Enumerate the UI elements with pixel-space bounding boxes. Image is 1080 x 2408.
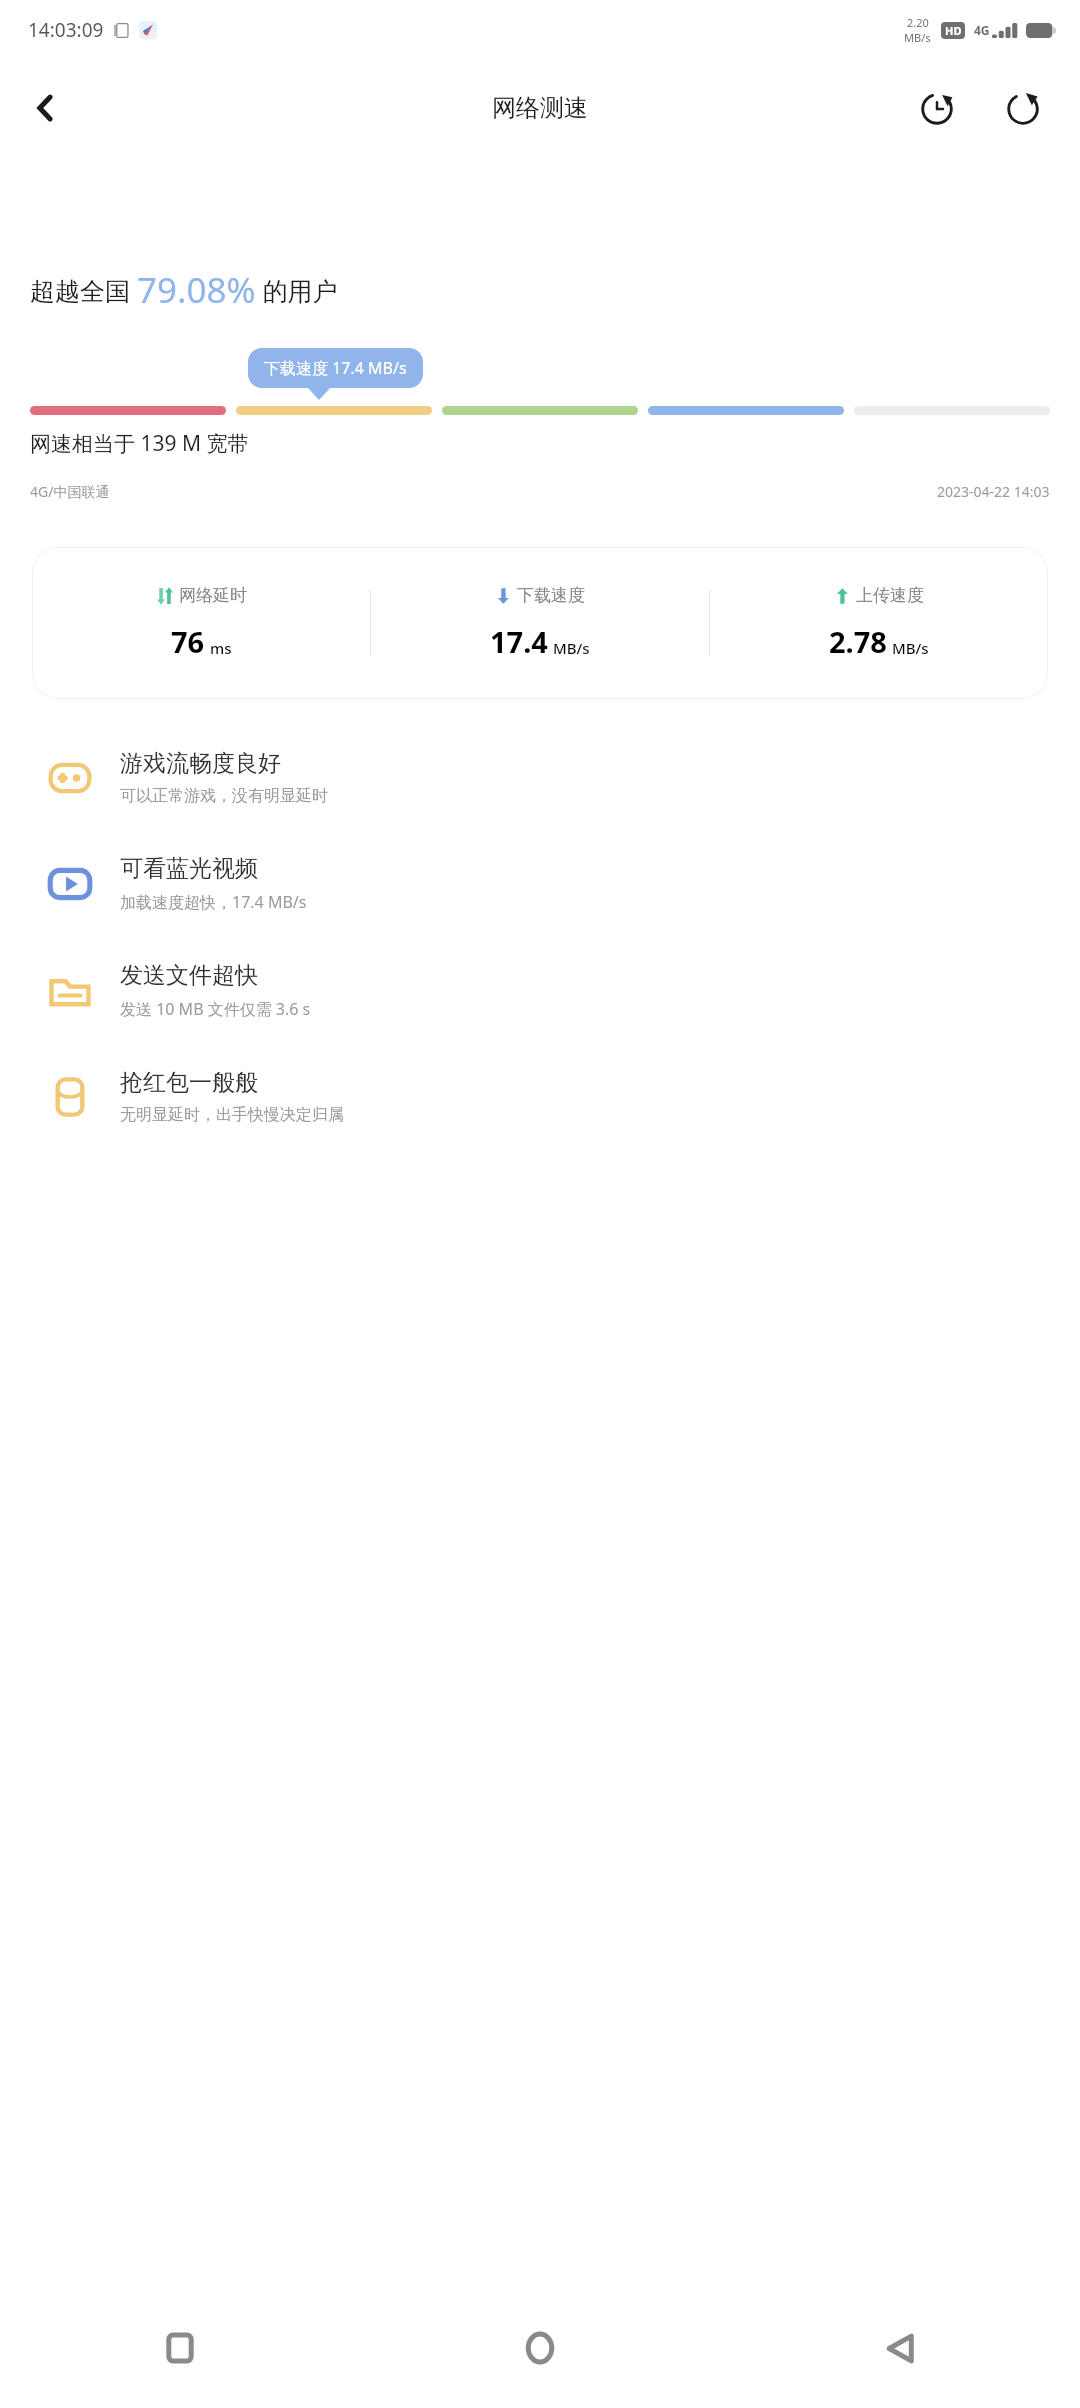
staticText: 抢红包一般般	[120, 1068, 258, 1097]
staticText: 加载速度超快，17.4 MB/s	[120, 891, 307, 913]
staticText: 无明显延时，出手快慢决定归属	[120, 1105, 344, 1125]
staticText: 4G/中国联通	[30, 482, 110, 501]
button[interactable]: Back	[720, 2288, 1080, 2408]
staticText: 可以正常游戏，没有明显延时	[120, 786, 328, 806]
button[interactable]: Back	[14, 76, 78, 140]
button[interactable]: Home	[360, 2288, 720, 2408]
staticText: 游戏流畅度良好	[120, 749, 281, 778]
staticText: 发送文件超快	[120, 961, 258, 990]
staticText: 下载速度	[517, 585, 585, 606]
staticText: 2.78	[829, 622, 887, 661]
staticText: 下载速度 17.4 MB/s	[264, 357, 407, 379]
staticText: 可看蓝光视频	[120, 854, 258, 883]
button[interactable]: History	[906, 77, 968, 139]
button[interactable]: 抢红包一般般	[0, 1060, 1080, 1133]
staticText: 2.20	[907, 15, 929, 30]
button[interactable]: 游戏流畅度良好	[0, 741, 1080, 814]
staticText: 网速相当于 139 M 宽带	[30, 429, 249, 458]
staticText: 网络延时	[179, 585, 247, 606]
staticText: 4G	[974, 22, 990, 38]
staticText: 76	[171, 622, 205, 661]
staticText: ms	[210, 638, 232, 658]
staticText: MB/s	[553, 638, 590, 658]
button[interactable]: Retest	[992, 77, 1054, 139]
staticText: 上传速度	[856, 585, 924, 606]
button[interactable]: 可看蓝光视频	[0, 846, 1080, 921]
staticText: MB/s	[892, 638, 929, 658]
staticText: HD	[945, 23, 962, 38]
staticText: 17.4	[490, 622, 548, 661]
staticText: 发送 10 MB 文件仅需 3.6 s	[120, 998, 311, 1020]
staticText: 14:03:09	[28, 17, 104, 43]
staticText: 的用户	[256, 273, 338, 307]
staticText: MB/s	[904, 30, 931, 45]
staticText: 网络测速	[492, 93, 588, 123]
staticText: 超越全国	[30, 273, 137, 307]
staticText: 79.08%	[137, 266, 256, 314]
button[interactable]: Recents	[0, 2288, 360, 2408]
button[interactable]: 发送文件超快	[0, 953, 1080, 1028]
staticText: 2023-04-22 14:03	[937, 482, 1050, 501]
